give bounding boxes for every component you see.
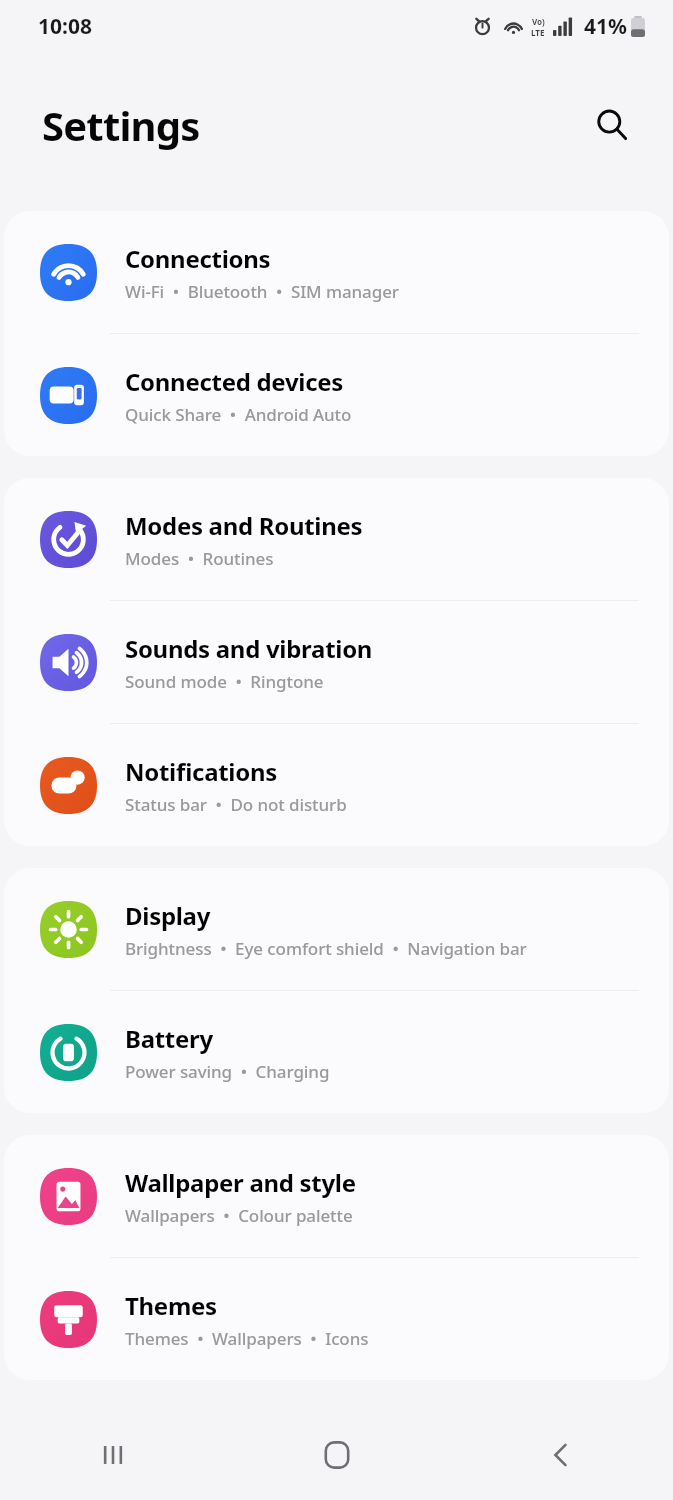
button[interactable]: Battery [4,991,669,1113]
staticText: Status bar • Do not disturb [125,793,347,816]
button[interactable]: Recents [0,1410,225,1500]
staticText: Connected devices [125,365,344,398]
staticText: Display [125,899,211,932]
button[interactable]: Display [4,868,669,990]
button[interactable]: Notifications [4,724,669,846]
staticText: Battery [125,1022,213,1055]
button[interactable]: Connections [4,211,669,333]
staticText: Wallpaper and style [125,1166,356,1199]
staticText: Modes and Routines [125,509,363,542]
staticText: Sounds and vibration [125,632,373,665]
button[interactable]: Search [581,94,643,156]
staticText: Vo) [532,16,545,27]
staticText: 41% [584,12,627,41]
staticText: Wi-Fi • Bluetooth • SIM manager [125,280,399,303]
staticText: LTE [531,27,545,38]
button[interactable]: Home [225,1410,449,1500]
staticText: Connections [125,242,271,275]
button[interactable]: Themes [4,1258,669,1380]
staticText: Settings [42,98,200,152]
staticText: Modes • Routines [125,547,274,570]
staticText: Power saving • Charging [125,1060,330,1083]
staticText: Themes [125,1289,217,1322]
button[interactable]: Back [449,1410,673,1500]
button[interactable]: Modes and Routines [4,478,669,600]
staticText: Notifications [125,755,277,788]
staticText: Quick Share • Android Auto [125,403,352,426]
staticText: Wallpapers • Colour palette [125,1204,353,1227]
staticText: Sound mode • Ringtone [125,670,324,693]
button[interactable]: Connected devices [4,334,669,456]
button[interactable]: Wallpaper and style [4,1135,669,1257]
staticText: Themes • Wallpapers • Icons [125,1327,369,1350]
staticText: Brightness • Eye comfort shield • Naviga… [125,937,527,960]
staticText: 10:08 [38,12,92,41]
button[interactable]: Sounds and vibration [4,601,669,723]
